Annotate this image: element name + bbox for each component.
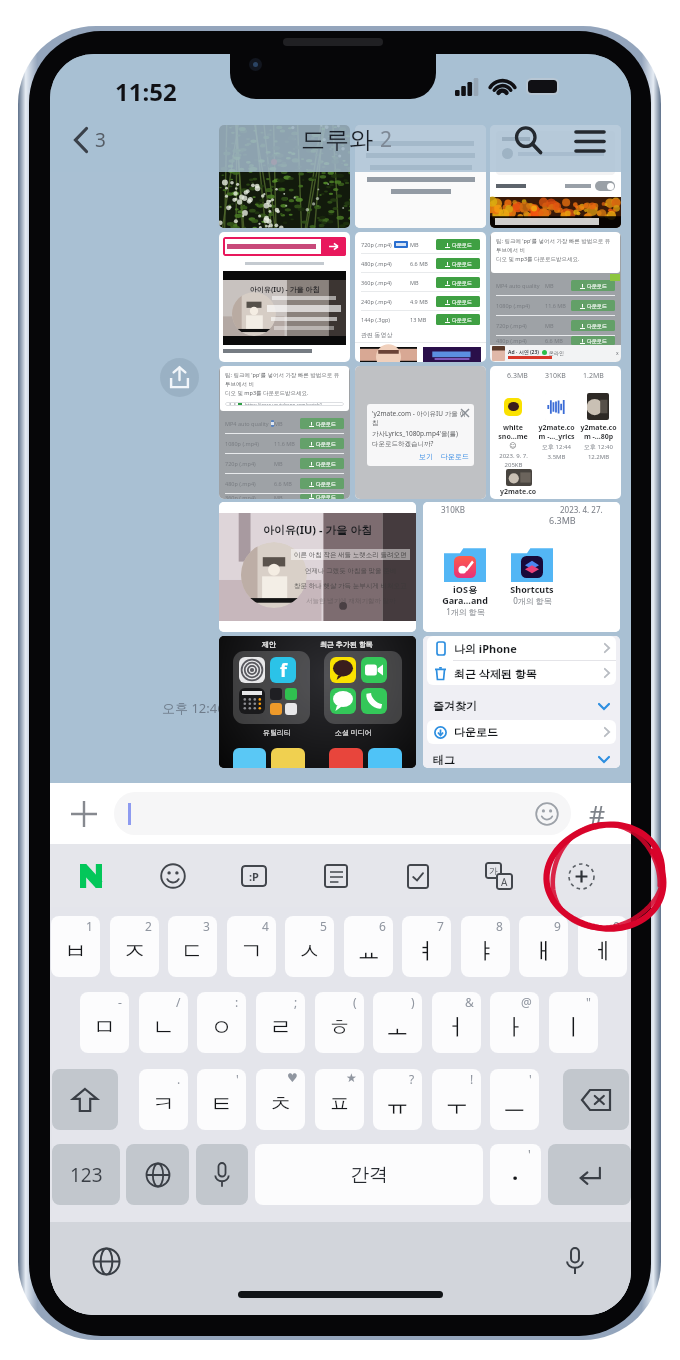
- button[interactable]: 5: [285, 916, 334, 977]
- button[interactable]: ": [549, 992, 598, 1053]
- staticText: y2mate.co m -..._yrics: [538, 423, 575, 441]
- button[interactable]: ): [373, 992, 422, 1053]
- button[interactable]: [114, 792, 571, 835]
- button[interactable]: 3: [168, 916, 217, 977]
- button[interactable]: ': [197, 1069, 246, 1130]
- button[interactable]: ?: [373, 1069, 422, 1130]
- button[interactable]: 6: [344, 916, 393, 977]
- button[interactable]: Language: [126, 1144, 189, 1205]
- staticText: ㅅ: [298, 937, 321, 966]
- button[interactable]: [355, 125, 486, 228]
- button[interactable]: 8: [461, 916, 510, 977]
- button[interactable]: 'y2mate.com - 아이유IU 가을 아침 가사Lyrics_1080p…: [355, 366, 486, 499]
- button[interactable]: Checklist: [397, 855, 439, 897]
- button[interactable]: Numbers: [52, 1144, 120, 1205]
- staticText: 0: [613, 918, 620, 934]
- button[interactable]: -: [80, 992, 129, 1053]
- staticText: !: [470, 1071, 474, 1087]
- button[interactable]: &: [432, 992, 481, 1053]
- staticText: 다운로드: [452, 280, 472, 286]
- button[interactable]: MP4 auto quality: [490, 232, 621, 362]
- button[interactable]: 아이유(IU) - 가을 아침: [219, 502, 416, 632]
- button[interactable]: Microphone: [553, 1239, 597, 1283]
- button[interactable]: 310KB: [423, 502, 620, 632]
- staticText: 9: [554, 918, 561, 934]
- button[interactable]: Emoji: [152, 855, 194, 897]
- staticText: 다운로드: [587, 323, 607, 329]
- button[interactable]: Backspace: [563, 1069, 629, 1130]
- staticText: ㄴ: [152, 1013, 175, 1042]
- staticText: 1080p (.mp4): [496, 302, 530, 309]
- staticText: 아이유(IU) - 가을 아침: [250, 285, 320, 295]
- button[interactable]: 4: [227, 916, 276, 977]
- button[interactable]: 태그: [433, 751, 610, 768]
- button[interactable]: ': [490, 1144, 541, 1205]
- staticText: 관련 동영상: [361, 331, 393, 339]
- button[interactable]: ': [490, 1069, 539, 1130]
- button[interactable]: Search: [506, 118, 550, 162]
- staticText: (: [353, 994, 357, 1010]
- staticText: ': [529, 1071, 532, 1087]
- staticText: 소셜 미디어: [335, 728, 372, 738]
- button[interactable]: 3: [68, 123, 112, 157]
- button[interactable]: 9: [519, 916, 568, 977]
- staticText: 언제나 그랬듯 아침을 맞을 준비: [305, 566, 397, 575]
- button[interactable]: 7: [402, 916, 451, 977]
- button[interactable]: [219, 125, 350, 228]
- staticText: 팁: 링크에 'pp'를 넣어서 가장 빠른 방법으로 유투브에서 비 디오 및…: [225, 371, 344, 397]
- staticText: ㅈ: [123, 937, 146, 966]
- button[interactable]: Return: [548, 1144, 631, 1205]
- button[interactable]: ★: [315, 1069, 364, 1130]
- staticText: 720p (.mp4): [496, 322, 527, 329]
- button[interactable]: Emoticon: [233, 855, 275, 897]
- button[interactable]: 나의 iPhone: [433, 636, 610, 660]
- button[interactable]: ♥: [256, 1069, 305, 1130]
- button[interactable]: 2: [110, 916, 159, 977]
- staticText: ㅣ: [562, 1013, 585, 1042]
- staticText: 0개의 항목: [513, 595, 552, 606]
- button[interactable]: Shift: [52, 1069, 118, 1130]
- button[interactable]: Share: [160, 358, 199, 397]
- button[interactable]: 6.3MB: [490, 366, 621, 499]
- button[interactable]: @: [490, 992, 539, 1053]
- button[interactable]: 아이유(IU) - 가을 아침: [219, 232, 350, 362]
- button[interactable]: 0: [578, 916, 627, 977]
- button[interactable]: Text: [315, 855, 357, 897]
- button[interactable]: More: [560, 855, 602, 897]
- button[interactable]: 720p (.mp4): [355, 232, 486, 362]
- button[interactable]: Translate: [478, 855, 520, 897]
- staticText: ㅑ: [474, 937, 497, 966]
- staticText: 2: [145, 918, 152, 934]
- staticText: 다운로드: [316, 494, 336, 499]
- button[interactable]: ;: [256, 992, 305, 1053]
- button[interactable]: 최근 삭제된 항목: [433, 661, 610, 685]
- button[interactable]: 나의 iPhone: [423, 636, 620, 768]
- staticText: 11:52: [115, 75, 177, 108]
- button[interactable]: .: [139, 1069, 188, 1130]
- button[interactable]: 제안: [219, 636, 416, 768]
- button[interactable]: 즐겨찾기: [433, 692, 610, 720]
- button[interactable]: Naver: [70, 855, 112, 897]
- staticText: MB: [274, 460, 283, 467]
- button[interactable]: (: [315, 992, 364, 1053]
- button[interactable]: /: [139, 992, 188, 1053]
- button[interactable]: [490, 125, 621, 228]
- button[interactable]: Hashtag: [575, 792, 619, 836]
- staticText: 6.3MB: [549, 514, 576, 526]
- button[interactable]: !: [432, 1069, 481, 1130]
- staticText: MP4 auto quality: [225, 420, 269, 427]
- staticText: y2mate.co m -...80p: [580, 423, 617, 441]
- button[interactable]: 다운로드: [433, 720, 610, 744]
- staticText: Shortcuts: [510, 583, 554, 595]
- button[interactable]: 간격: [255, 1144, 483, 1205]
- staticText: 다운로드: [452, 261, 472, 267]
- button[interactable]: Voice input: [196, 1144, 248, 1205]
- button[interactable]: Globe: [84, 1239, 128, 1283]
- button[interactable]: MP4 auto quality: [219, 366, 350, 499]
- button[interactable]: 1: [51, 916, 100, 977]
- staticText: 240p (.mp4): [361, 298, 392, 305]
- button[interactable]: Add attachment: [62, 792, 106, 836]
- staticText: ㅂ: [64, 937, 87, 966]
- button[interactable]: Menu: [568, 118, 612, 162]
- button[interactable]: :: [197, 992, 246, 1053]
